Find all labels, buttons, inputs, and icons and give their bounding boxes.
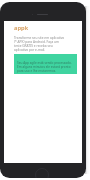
button[interactable]: appk [14,24,29,32]
button[interactable]: Home [35,168,49,178]
button[interactable]: Seu App agile está sendo processado. Em … [14,54,77,74]
staticText: Seu App agile está sendo processado. Em … [17,61,74,73]
staticText: Transforme seu site em aplicativo (*.APK… [14,36,67,52]
